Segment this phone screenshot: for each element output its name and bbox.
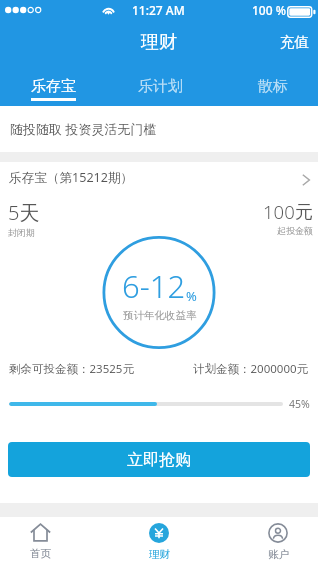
button[interactable]: 账户 xyxy=(258,517,298,566)
staticText: % xyxy=(186,287,197,305)
staticText: 6-12 xyxy=(122,265,186,307)
staticText: 散标 xyxy=(258,77,288,96)
other: Details xyxy=(302,174,310,186)
staticText: 剩余可投金额：23525元 xyxy=(9,361,134,377)
staticText: 100 % xyxy=(252,2,286,18)
button[interactable]: 立即抢购 xyxy=(8,442,310,477)
button[interactable]: 散标 xyxy=(219,62,318,106)
staticText: 预计年化收益率 xyxy=(123,309,197,322)
button[interactable]: 首页 xyxy=(20,517,60,566)
staticText: 5天 xyxy=(8,199,40,226)
staticText: 随投随取 投资灵活无门槛 xyxy=(10,120,157,138)
staticText: 乐存宝（第15212期） xyxy=(9,169,134,186)
staticText: 充值 xyxy=(280,33,309,51)
staticText: 计划金额：2000000元 xyxy=(193,361,309,377)
staticText: 100 xyxy=(263,199,295,224)
button[interactable]: 乐计划 xyxy=(107,62,213,106)
staticText: 理财 xyxy=(149,548,170,561)
staticText: 起投金额 xyxy=(277,225,313,236)
staticText: 45% xyxy=(289,397,310,411)
button[interactable]: 乐存宝 xyxy=(0,62,106,106)
button[interactable]: 充值 xyxy=(271,25,318,59)
button[interactable]: 理财 xyxy=(139,517,179,566)
staticText: 账户 xyxy=(268,548,289,561)
staticText: 理财 xyxy=(141,31,177,54)
staticText: 乐计划 xyxy=(138,77,183,96)
button[interactable]: 乐存宝（第15212期） xyxy=(0,162,318,192)
staticText: 乐存宝 xyxy=(31,77,76,96)
staticText: 元 xyxy=(295,201,313,224)
staticText: 11:27 AM xyxy=(132,2,185,18)
staticText: 首页 xyxy=(30,547,51,560)
staticText: 封闭期 xyxy=(8,227,35,238)
staticText: 立即抢购 xyxy=(127,450,191,470)
